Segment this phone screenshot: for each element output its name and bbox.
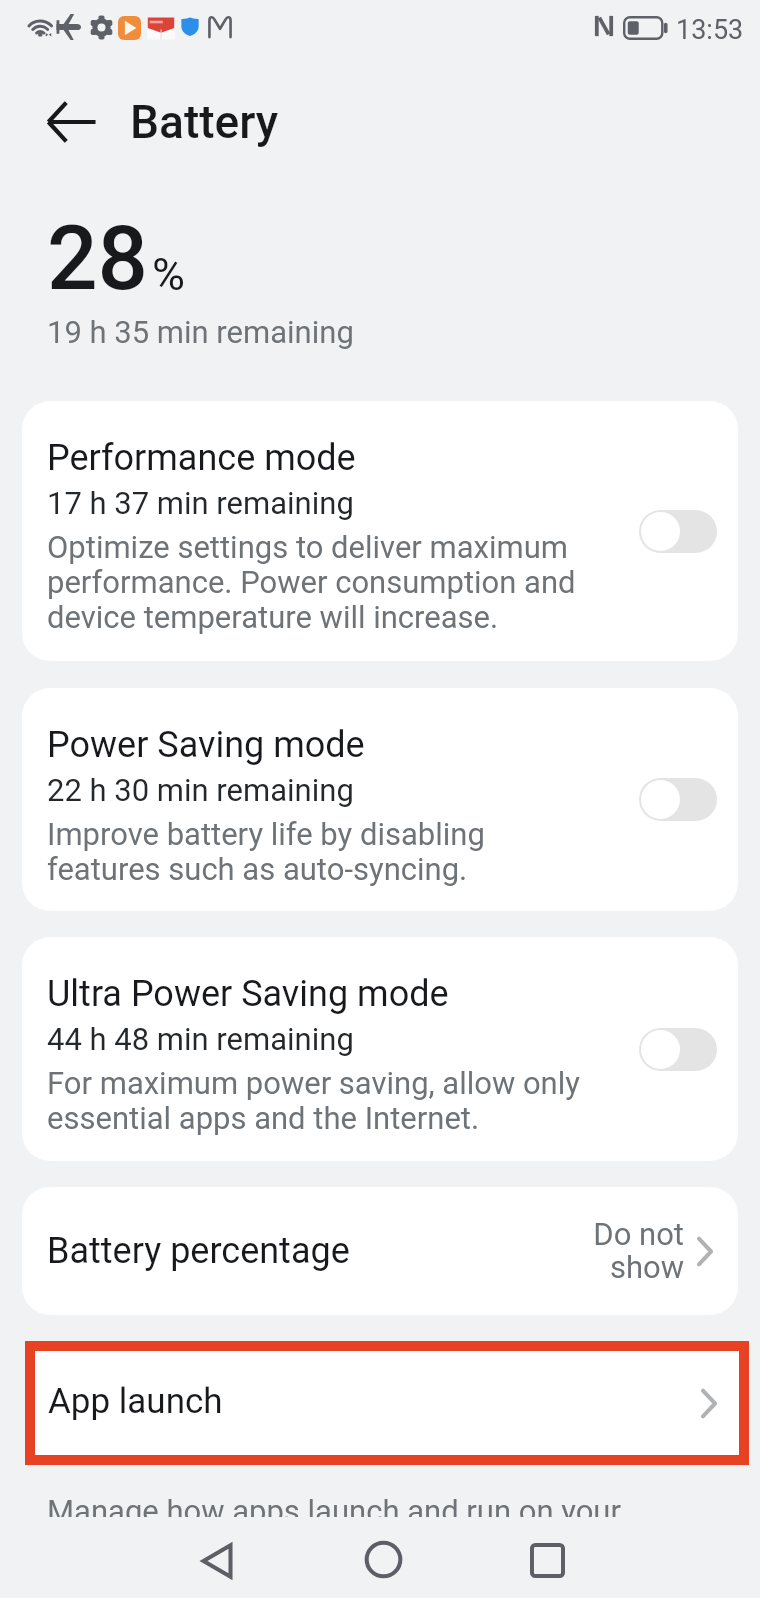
staticText: 44 h 48 min remaining <box>47 1021 354 1057</box>
staticText: Manage how apps launch and run on your <box>47 1493 621 1529</box>
staticText: % <box>152 248 185 301</box>
staticText: 22 h 30 min remaining <box>47 772 354 808</box>
staticText: Battery percentage <box>47 1230 350 1272</box>
button[interactable]: Battery percentage <box>22 1187 738 1315</box>
button[interactable]: Performance mode <box>22 401 738 661</box>
staticText: performance. Power consumption and <box>47 564 576 600</box>
button[interactable]: Back <box>34 84 110 160</box>
staticText: Ultra Power Saving mode <box>47 973 449 1015</box>
staticText: Improve battery life by disabling <box>47 816 485 852</box>
staticText: Battery <box>130 95 279 149</box>
staticText: Performance mode <box>47 437 356 479</box>
staticText: Do not show <box>562 1216 684 1286</box>
button[interactable]: Toggle <box>639 510 717 553</box>
button[interactable]: Toggle <box>639 1028 717 1071</box>
staticText: features such as auto-syncing. <box>47 851 468 887</box>
staticText: For maximum power saving, allow only <box>47 1065 580 1101</box>
staticText: 17 h 37 min remaining <box>47 485 354 521</box>
button[interactable]: App launch <box>35 1351 739 1455</box>
button[interactable]: Back <box>169 1520 265 1598</box>
button[interactable]: Ultra Power Saving mode <box>22 937 738 1161</box>
button[interactable]: Power Saving mode <box>22 688 738 911</box>
button[interactable]: Toggle <box>639 778 717 821</box>
staticText: 13:53 <box>676 14 744 46</box>
staticText: device temperature will increase. <box>47 599 499 635</box>
button[interactable]: Home <box>335 1519 431 1598</box>
staticText: essential apps and the Internet. <box>47 1100 480 1136</box>
staticText: 28 <box>47 206 149 310</box>
button[interactable]: Recents <box>499 1520 595 1598</box>
staticText: 19 h 35 min remaining <box>47 314 354 350</box>
staticText: Optimize settings to deliver maximum <box>47 529 568 565</box>
staticText: App launch <box>48 1381 223 1422</box>
staticText: Power Saving mode <box>47 724 365 766</box>
